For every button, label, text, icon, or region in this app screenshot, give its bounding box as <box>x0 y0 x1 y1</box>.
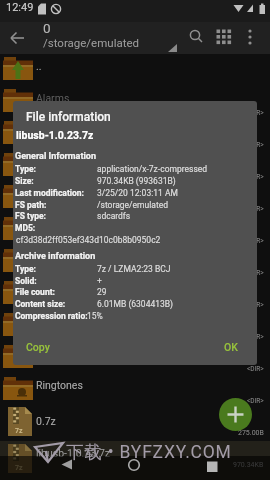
staticText: OK <box>224 341 238 353</box>
staticText: <DIR> <box>247 397 264 405</box>
staticText: <DIR> <box>247 141 264 149</box>
staticText: <DIR> <box>247 301 264 309</box>
staticText: File information <box>26 110 111 124</box>
staticText: 275.00B <box>238 429 264 437</box>
staticText: <DIR> <box>247 269 264 277</box>
staticText: Last modification: <box>15 188 84 198</box>
button[interactable]: OK <box>212 336 250 358</box>
staticText: 0 <box>43 20 51 36</box>
button[interactable] <box>4 26 30 50</box>
staticText: 970.34KB (993631B) <box>97 176 176 186</box>
staticText: Ringtones <box>36 379 83 391</box>
staticText: FS type: <box>15 211 46 221</box>
staticText: <DIR> <box>247 365 264 373</box>
staticText: libusb-1.0.23.7z <box>16 129 94 141</box>
staticText: cf3d38d2ff053ef343d10c0b8b0950c2 <box>16 235 161 245</box>
staticText: sdcardfs <box>97 211 131 221</box>
button[interactable] <box>122 453 146 477</box>
staticText: File count: <box>15 287 55 297</box>
button[interactable] <box>55 453 79 477</box>
staticText: /storage/emulated <box>43 36 140 49</box>
staticText: <DIR> <box>247 173 264 181</box>
staticText: Type: <box>15 164 36 174</box>
staticText: 7z <box>15 427 23 435</box>
staticText: Copy <box>26 341 50 353</box>
staticText: FS path: <box>15 200 47 210</box>
staticText: Type: <box>15 264 36 274</box>
staticText: 6.01MB (6304413B) <box>97 299 174 309</box>
staticText: Archive information <box>15 251 96 262</box>
staticText: .. <box>36 60 42 72</box>
staticText: 0.7z <box>36 415 56 427</box>
staticText: <DIR> <box>247 109 264 117</box>
button[interactable] <box>0 441 270 480</box>
button[interactable] <box>219 398 252 431</box>
button[interactable]: Copy <box>15 336 61 358</box>
button[interactable] <box>213 26 236 50</box>
button[interactable] <box>241 26 261 50</box>
staticText: Compression ratio: <box>15 311 88 321</box>
staticText: MD5: <box>15 223 36 233</box>
staticText: 29 <box>97 287 107 297</box>
staticText: libusb-1.0.23.7z <box>36 447 111 459</box>
staticText: <DIR> <box>247 205 264 213</box>
staticText: 970.34KB <box>233 461 264 469</box>
staticText: Content size: <box>15 299 66 309</box>
staticText: 下载 • BYFZXY.COM <box>66 441 232 463</box>
staticText: <DIR> <box>247 333 264 341</box>
button[interactable]: /storage/emulated <box>43 36 140 51</box>
staticText: 15% <box>87 311 103 321</box>
button[interactable] <box>0 57 270 89</box>
staticText: + <box>97 276 102 286</box>
staticText: 7z <box>15 464 23 472</box>
staticText: Size: <box>15 176 34 186</box>
staticText: 12:49 <box>6 1 34 14</box>
staticText: application/x-7z-compressed <box>97 164 208 174</box>
staticText: Solid: <box>15 276 37 286</box>
staticText: <DIR> <box>247 237 264 245</box>
button[interactable] <box>201 456 225 480</box>
button[interactable] <box>0 377 270 409</box>
staticText: General Information <box>15 151 96 162</box>
button[interactable] <box>185 26 207 50</box>
staticText: 3/25/20 12:03:11 AM <box>97 188 178 198</box>
button[interactable] <box>0 409 270 441</box>
staticText: /storage/emulated <box>97 200 168 210</box>
staticText: 7z / LZMA2:23 BCJ <box>97 264 171 274</box>
staticText: Alarms <box>36 92 70 104</box>
